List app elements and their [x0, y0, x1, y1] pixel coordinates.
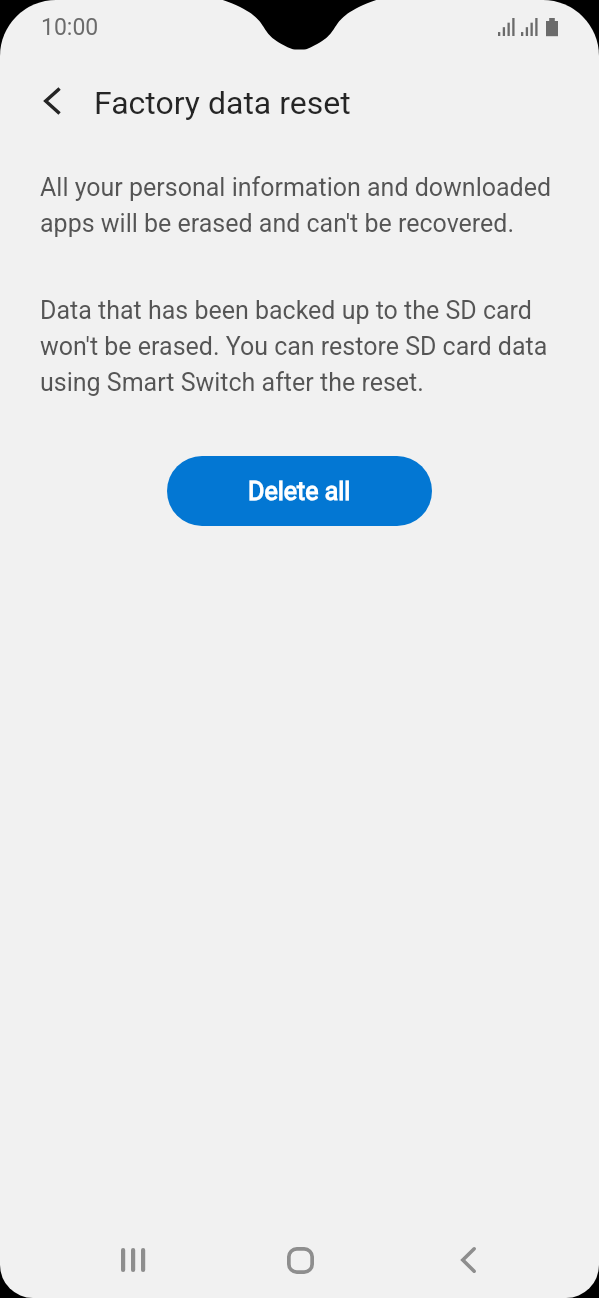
button[interactable]: Delete all	[167, 456, 432, 526]
button[interactable]: Recent apps	[93, 1220, 173, 1298]
button[interactable]: Back	[428, 1220, 508, 1298]
staticText: All your personal information and downlo…	[40, 167, 565, 239]
button[interactable]: Navigate up	[30, 79, 74, 123]
staticText: Factory data reset	[94, 84, 351, 122]
staticText: 10:00	[41, 14, 99, 41]
button[interactable]: Home	[260, 1220, 340, 1298]
staticText: Data that has been backed up to the SD c…	[40, 290, 565, 398]
staticText: Delete all	[248, 477, 351, 506]
